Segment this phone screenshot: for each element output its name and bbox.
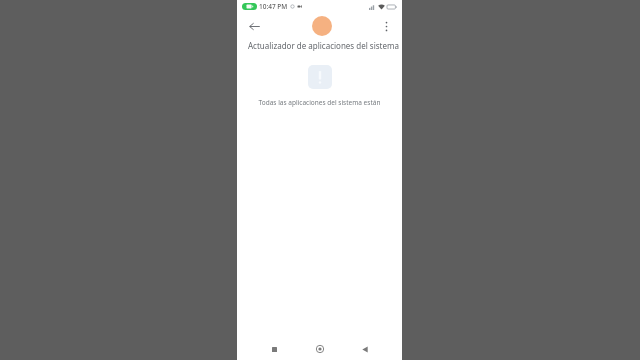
staticText: Todas las aplicaciones del sistema están… — [243, 98, 396, 107]
staticText: 10:47 PM — [259, 2, 288, 11]
button[interactable]: Recientes — [265, 340, 283, 358]
button[interactable]: Atrás — [245, 17, 263, 35]
button[interactable]: Atrás — [356, 340, 374, 358]
button[interactable]: Inicio — [311, 340, 329, 358]
button[interactable]: Más opciones — [377, 17, 395, 35]
staticText: Actualizador de aplicaciones del sistema — [248, 40, 399, 51]
